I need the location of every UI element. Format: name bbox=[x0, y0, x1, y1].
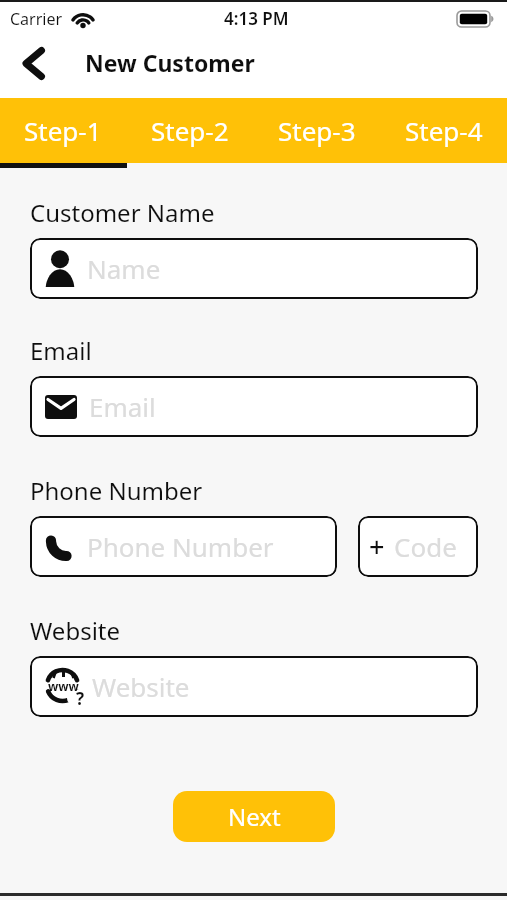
button[interactable]: Step-3 bbox=[253, 98, 380, 163]
staticText: New Customer bbox=[85, 47, 255, 78]
staticText: + bbox=[369, 528, 385, 565]
staticText: Phone Number bbox=[87, 529, 274, 564]
button[interactable]: Phone Number bbox=[30, 516, 337, 577]
staticText: Code bbox=[394, 529, 457, 564]
staticText: 4:13 PM bbox=[224, 7, 289, 30]
staticText: Customer Name bbox=[30, 196, 215, 229]
staticText: Step-4 bbox=[405, 113, 483, 148]
staticText: Step-2 bbox=[151, 113, 229, 148]
staticText: Website bbox=[92, 669, 190, 704]
staticText: Email bbox=[30, 334, 92, 367]
button[interactable]: Name bbox=[30, 238, 478, 299]
staticText: Step-3 bbox=[278, 113, 356, 148]
button[interactable]: Email bbox=[30, 376, 478, 437]
button[interactable]: Step-4 bbox=[380, 98, 507, 163]
button[interactable] bbox=[22, 47, 45, 80]
staticText: www bbox=[48, 678, 79, 694]
staticText: Step-1 bbox=[24, 113, 102, 148]
staticText: Email bbox=[89, 389, 156, 424]
staticText: ? bbox=[76, 687, 85, 710]
staticText: Name bbox=[87, 251, 161, 286]
staticText: Next bbox=[228, 800, 281, 833]
button[interactable]: Step-1 bbox=[0, 98, 126, 163]
staticText: Carrier bbox=[10, 8, 63, 30]
button[interactable]: www bbox=[30, 656, 478, 717]
staticText: Phone Number bbox=[30, 474, 203, 507]
staticText: Website bbox=[30, 614, 121, 647]
button[interactable]: Step-2 bbox=[126, 98, 253, 163]
button[interactable]: + bbox=[358, 516, 478, 577]
button[interactable]: Next bbox=[173, 791, 335, 842]
